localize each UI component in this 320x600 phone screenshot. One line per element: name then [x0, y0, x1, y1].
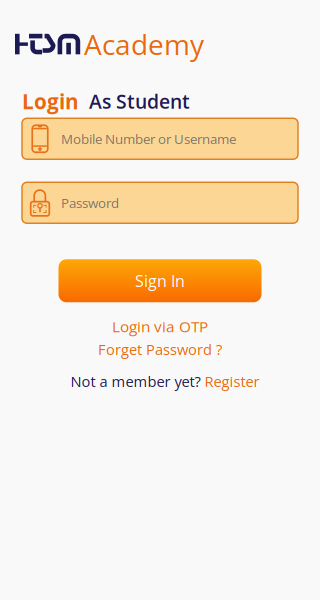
staticText: Forget Password ? [98, 339, 222, 359]
staticText: Academy [84, 25, 204, 63]
button[interactable]: Login via OTP [112, 317, 208, 335]
staticText: Mobile Number or Username [61, 130, 236, 148]
button[interactable]: Mobile Number or Username [22, 118, 298, 159]
staticText: Sign In [135, 270, 185, 292]
button[interactable]: Register [200, 371, 259, 391]
staticText: Login [22, 87, 79, 115]
button[interactable]: Forget Password ? [98, 340, 222, 358]
staticText: Password [61, 194, 119, 212]
button[interactable]: Sign In [58, 259, 261, 302]
staticText: Not a member yet? [70, 371, 200, 391]
button[interactable]: Password [22, 182, 298, 223]
staticText: Register [204, 371, 259, 391]
staticText: As Student [89, 88, 190, 114]
staticText: Login via OTP [112, 316, 208, 337]
